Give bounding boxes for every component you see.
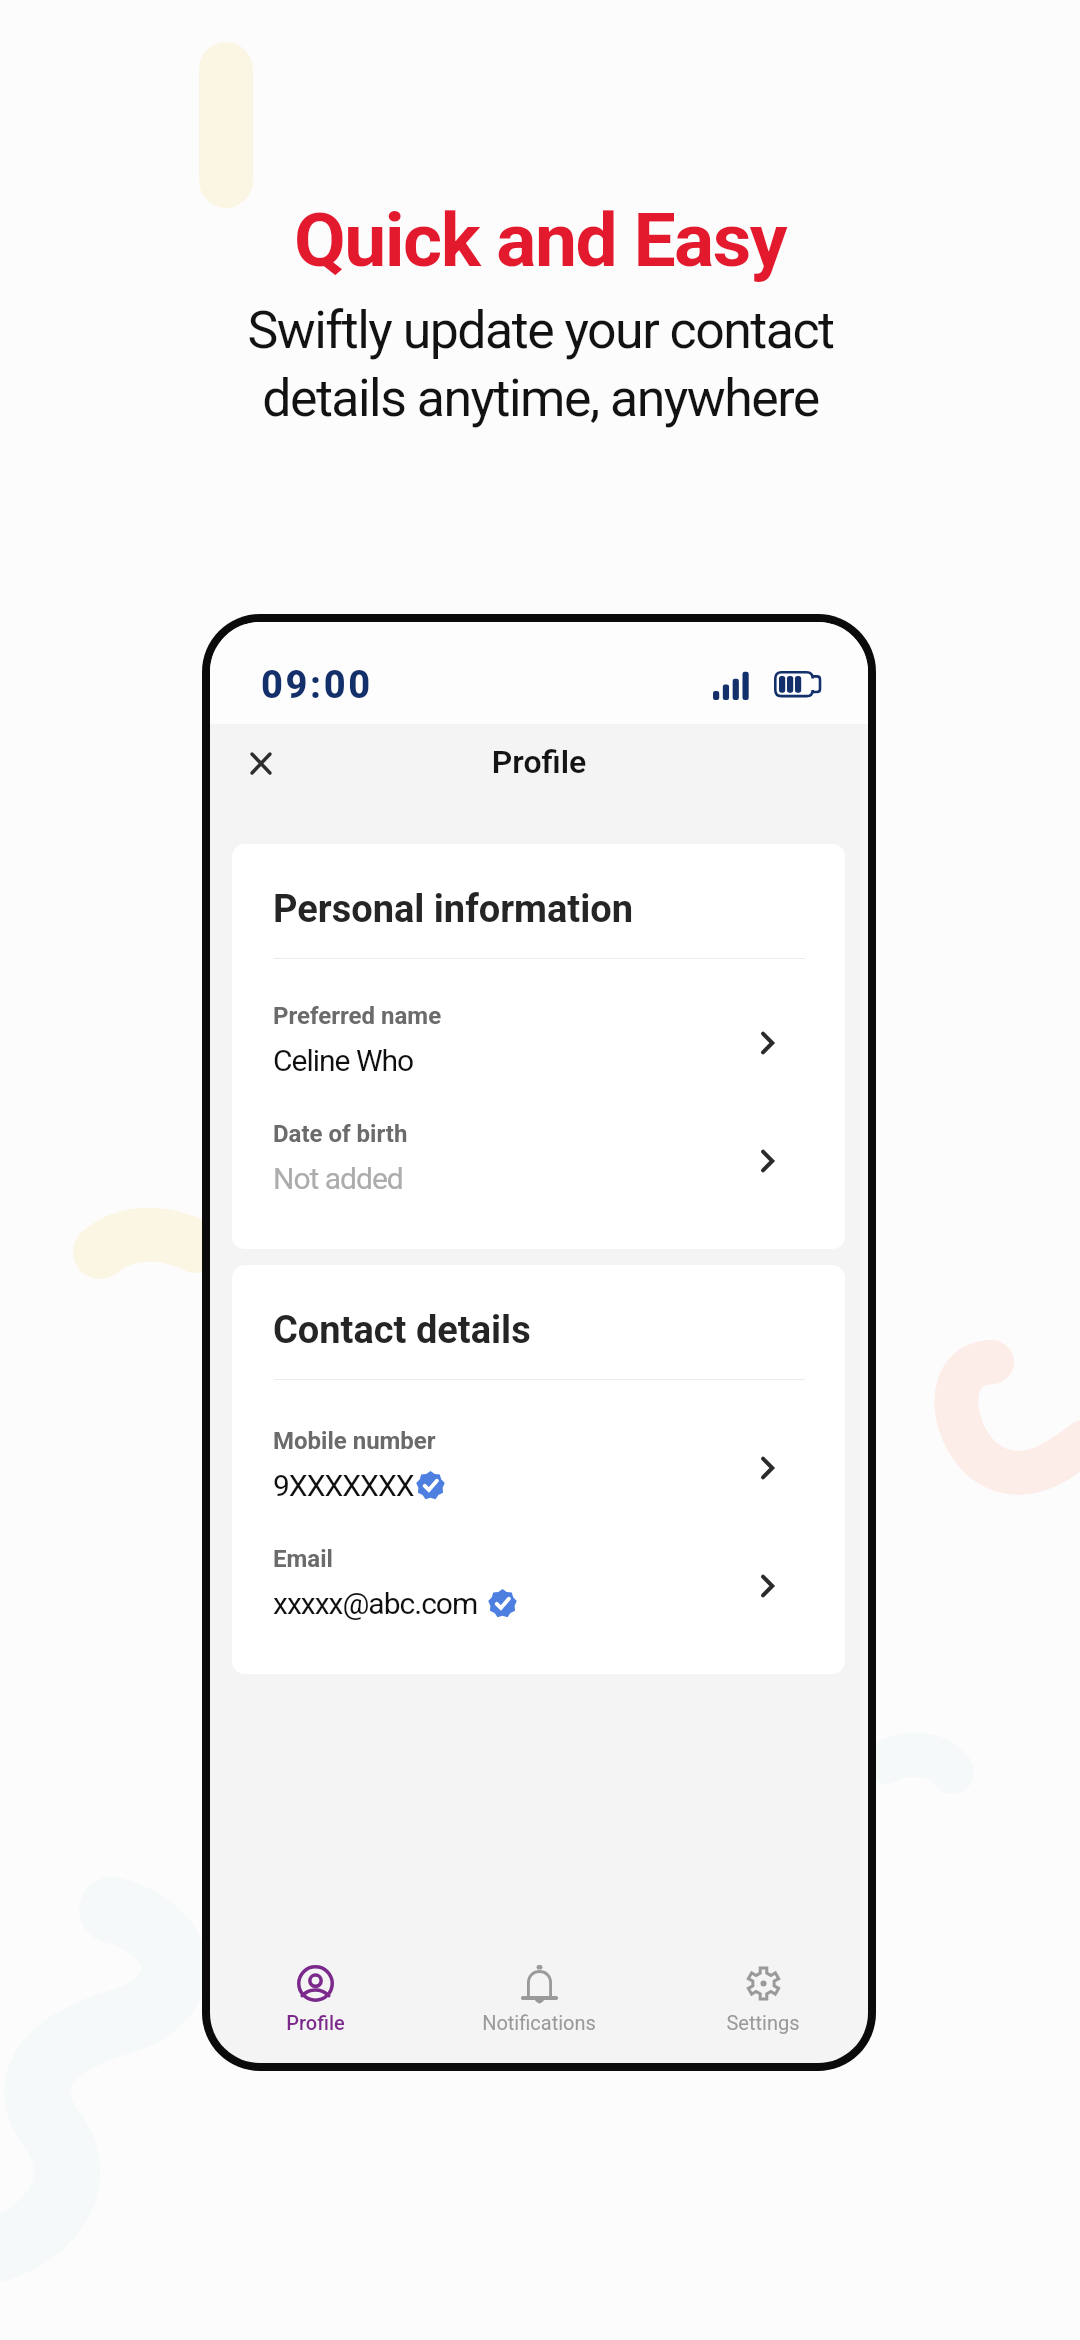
staticText: Preferred name [273,1002,442,1030]
staticText: Settings [726,2011,800,2034]
staticText: xxxxx@abc.com [273,1586,478,1621]
button[interactable]: Date of birth [273,1120,783,1196]
button[interactable]: Settings [663,1965,863,2034]
button[interactable]: Close [230,732,292,794]
staticText: Celine Who [273,1043,414,1078]
staticText: Quick and Easy [294,196,786,284]
staticText: Contact details [273,1308,531,1353]
staticText: Notifications [482,2011,596,2034]
button[interactable]: Email [273,1545,783,1621]
button[interactable]: Mobile number [273,1427,783,1503]
button[interactable]: Profile [215,1965,415,2034]
staticText: Profile [286,2011,345,2034]
staticText: 09:00 [261,663,373,708]
button[interactable]: Preferred name [273,1002,783,1078]
staticText: Not added [273,1161,403,1196]
staticText: Swiftly update your contact details anyt… [247,300,834,428]
staticText: Email [273,1545,333,1573]
staticText: 9XXXXXXX [273,1468,414,1503]
button[interactable]: Notifications [439,1965,639,2034]
staticText: Mobile number [273,1427,436,1455]
staticText: Personal information [273,887,634,932]
staticText: Profile [210,743,868,781]
staticText: Date of birth [273,1120,408,1148]
